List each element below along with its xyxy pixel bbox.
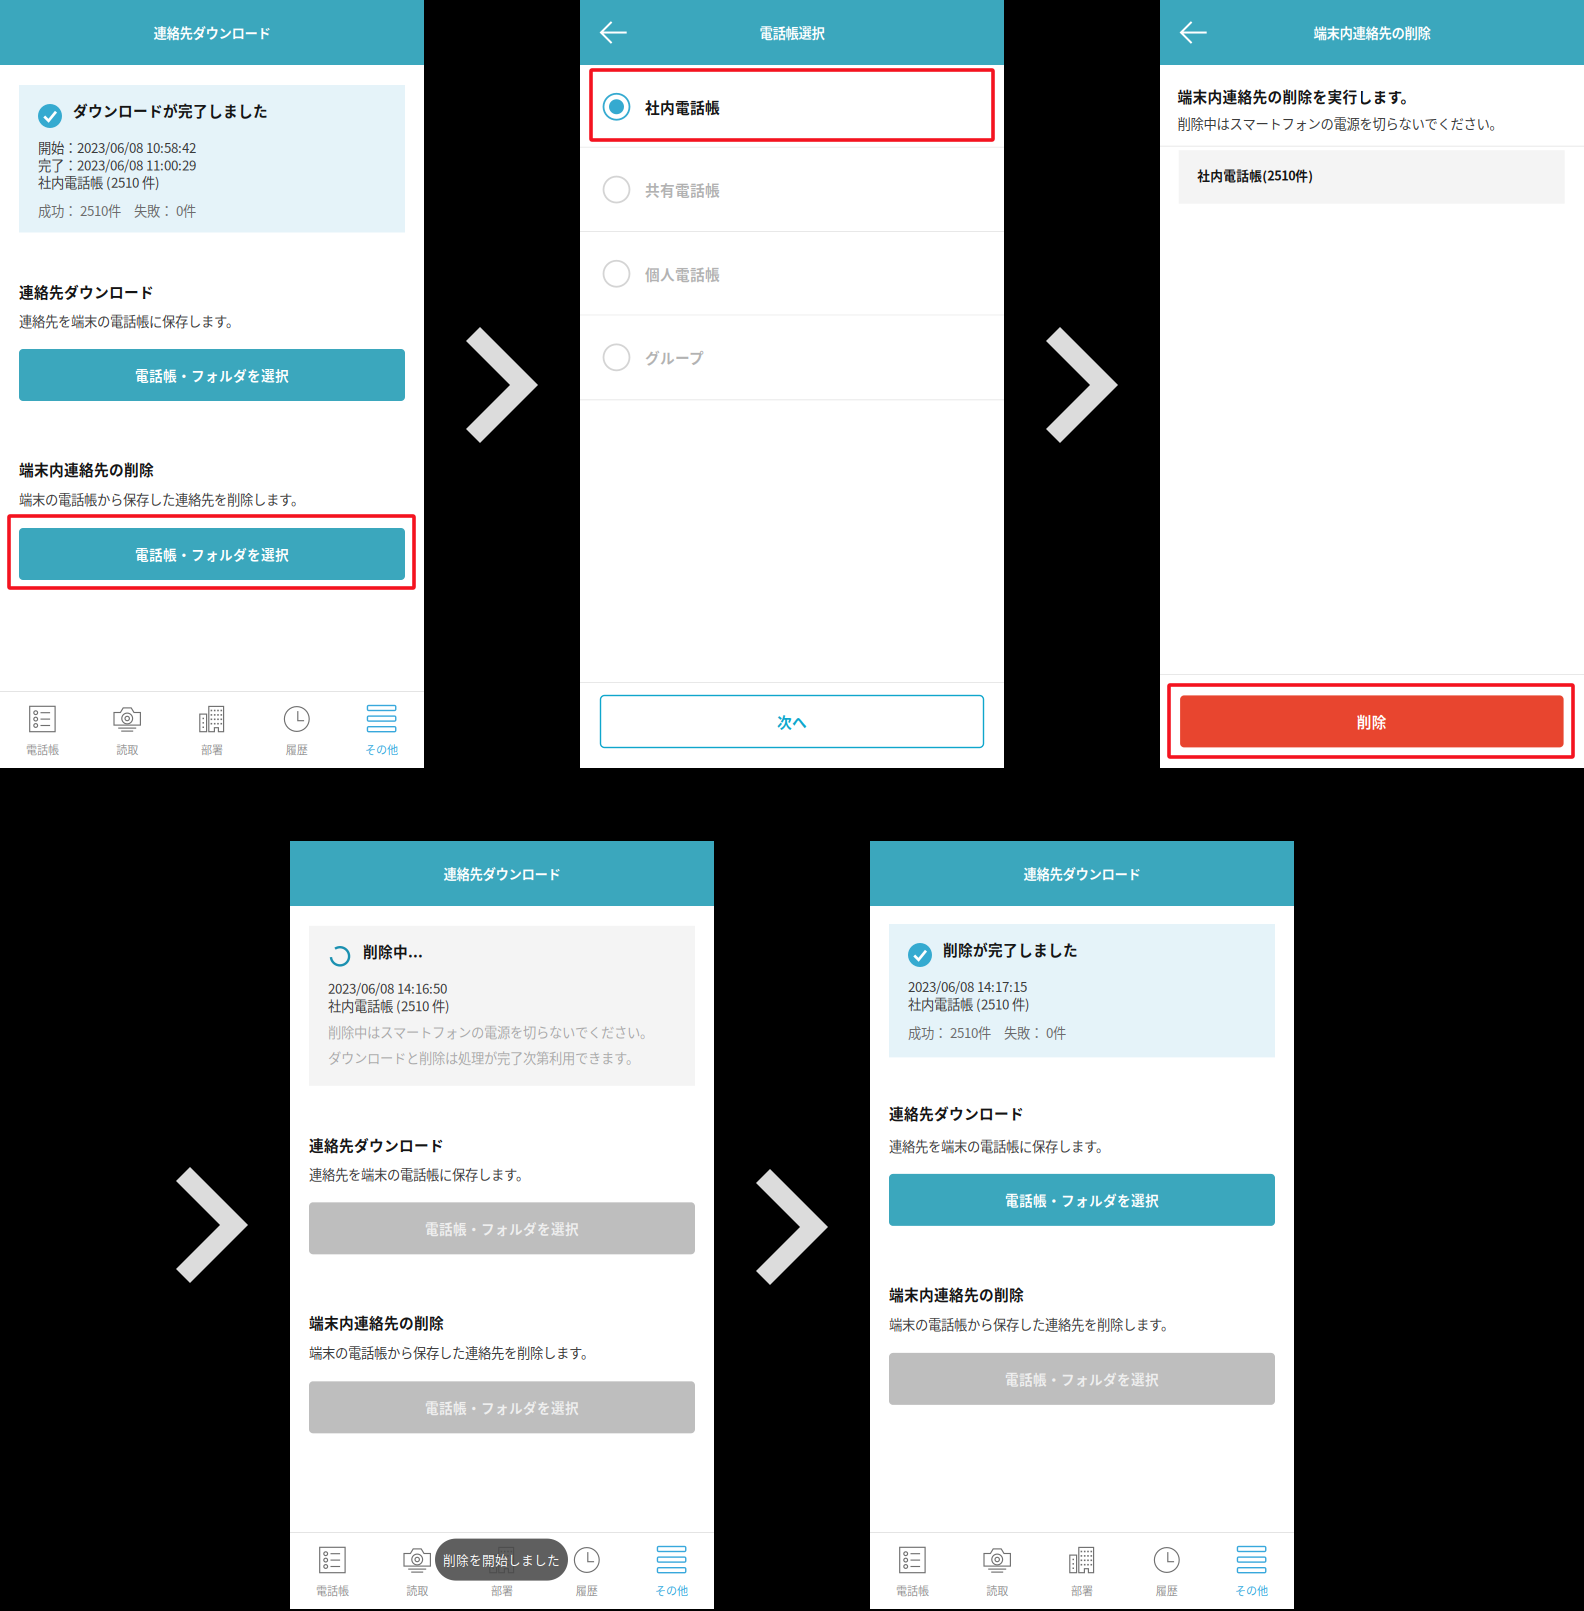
button[interactable]: 共有電話帳	[580, 148, 1004, 231]
button[interactable]: 電話帳・フォルダを選択	[19, 528, 405, 580]
staticText: 電話帳・フォルダを選択	[425, 1218, 579, 1238]
button[interactable]: 次へ	[600, 695, 983, 747]
staticText: 個人電話帳	[645, 263, 720, 284]
staticText: 端末の電話帳から保存した連絡先を削除します。	[309, 1343, 594, 1362]
staticText: 電話帳	[896, 1582, 929, 1598]
staticText: 連絡先ダウンロード	[1023, 864, 1140, 883]
staticText: 読取	[986, 1582, 1008, 1598]
staticText: 削除	[1357, 711, 1387, 732]
staticText: 連絡先を端末の電話帳に保存します。	[309, 1164, 529, 1184]
staticText: 社内電話帳(2510件)	[1197, 166, 1313, 184]
staticText: 削除を開始しました	[443, 1550, 560, 1569]
staticText: 端末の電話帳から保存した連絡先を削除します。	[19, 489, 304, 509]
staticText: 成功： 2510件 失敗： 0件	[908, 1022, 1066, 1042]
staticText: 電話帳・フォルダを選択	[135, 544, 289, 564]
staticText: 端末内連絡先の削除	[1313, 23, 1430, 42]
button[interactable]: 部署	[170, 692, 254, 768]
staticText: 電話帳・フォルダを選択	[425, 1397, 579, 1417]
staticText: 端末内連絡先の削除	[19, 458, 154, 480]
staticText: 部署	[201, 741, 223, 757]
staticText: 読取	[406, 1582, 428, 1598]
button[interactable]: 履歴	[254, 692, 339, 768]
staticText: 連絡先ダウンロード	[19, 281, 154, 302]
staticText: 履歴	[1156, 1582, 1178, 1598]
staticText: 社内電話帳 (2510 件)	[328, 996, 450, 1015]
staticText: グループ	[645, 347, 704, 368]
button[interactable]: 個人電話帳	[580, 232, 1004, 315]
button[interactable]: その他	[629, 1533, 714, 1609]
button[interactable]: 読取	[375, 1533, 460, 1609]
staticText: 開始：2023/06/08 10:58:42	[38, 137, 196, 157]
staticText: 完了：2023/06/08 11:00:29	[38, 155, 196, 174]
staticText: 読取	[116, 741, 138, 757]
button[interactable]: 履歴	[1124, 1533, 1209, 1609]
staticText: 電話帳選択	[759, 23, 824, 42]
staticText: 端末内連絡先の削除	[889, 1283, 1024, 1305]
staticText: その他	[1235, 1582, 1268, 1598]
staticText: 電話帳・フォルダを選択	[135, 365, 289, 385]
button[interactable]: 電話帳・フォルダを選択	[309, 1381, 695, 1433]
staticText: 次へ	[777, 711, 807, 732]
staticText: 連絡先を端末の電話帳に保存します。	[19, 311, 239, 330]
staticText: 連絡先ダウンロード	[889, 1103, 1024, 1124]
staticText: 電話帳・フォルダを選択	[1005, 1369, 1159, 1389]
button[interactable]: その他	[1209, 1533, 1294, 1609]
button[interactable]: グループ	[580, 316, 1004, 399]
button[interactable]: 電話帳・フォルダを選択	[19, 349, 405, 401]
staticText: 連絡先ダウンロード	[153, 23, 270, 42]
staticText: 削除が完了しました	[943, 939, 1078, 960]
button[interactable]: 電話帳	[870, 1533, 955, 1609]
button[interactable]: 戻る	[1169, 0, 1217, 65]
staticText: 社内電話帳 (2510 件)	[38, 172, 160, 192]
staticText: 電話帳	[26, 741, 59, 757]
staticText: 電話帳	[316, 1582, 349, 1598]
staticText: 削除中はスマートフォンの電源を切らないでください。	[1177, 113, 1502, 133]
button[interactable]: 戻る	[589, 0, 637, 65]
staticText: ダウンロードと削除は処理が完了次第利用できます。	[328, 1048, 639, 1067]
staticText: 連絡先ダウンロード	[309, 1134, 444, 1155]
button[interactable]: 読取	[85, 692, 170, 768]
staticText: 連絡先ダウンロード	[443, 864, 560, 883]
staticText: 2023/06/08 14:17:15	[908, 976, 1027, 996]
button[interactable]: 電話帳	[290, 1533, 375, 1609]
staticText: 履歴	[286, 741, 308, 757]
staticText: 削除中はスマートフォンの電源を切らないでください。	[328, 1022, 653, 1041]
staticText: ダウンロードが完了しました	[73, 100, 268, 121]
staticText: 端末内連絡先の削除を実行します。	[1177, 85, 1415, 107]
staticText: 社内電話帳 (2510 件)	[908, 994, 1030, 1013]
staticText: 履歴	[576, 1582, 598, 1598]
staticText: 2023/06/08 14:16:50	[328, 978, 447, 998]
staticText: その他	[365, 741, 398, 757]
staticText: 部署	[491, 1582, 513, 1598]
button[interactable]: 読取	[955, 1533, 1040, 1609]
button[interactable]: 部署	[460, 1533, 544, 1609]
button[interactable]: 電話帳・フォルダを選択	[889, 1353, 1275, 1405]
staticText: 端末内連絡先の削除	[309, 1312, 444, 1333]
button[interactable]: 電話帳	[0, 692, 85, 768]
button[interactable]: 電話帳・フォルダを選択	[889, 1174, 1275, 1226]
button[interactable]: 社内電話帳	[580, 65, 1004, 148]
staticText: 連絡先を端末の電話帳に保存します。	[889, 1136, 1109, 1155]
button[interactable]: 削除	[1180, 695, 1564, 747]
staticText: 部署	[1071, 1582, 1093, 1598]
button[interactable]: 電話帳・フォルダを選択	[309, 1202, 695, 1254]
staticText: 社内電話帳	[645, 96, 720, 117]
button[interactable]: 履歴	[544, 1533, 629, 1609]
button[interactable]: その他	[339, 692, 424, 768]
staticText: 削除中...	[363, 941, 423, 962]
staticText: 共有電話帳	[645, 179, 720, 200]
staticText: 成功： 2510件 失敗： 0件	[38, 200, 196, 220]
staticText: その他	[655, 1582, 688, 1598]
staticText: 電話帳・フォルダを選択	[1005, 1190, 1159, 1210]
staticText: 端末の電話帳から保存した連絡先を削除します。	[889, 1314, 1174, 1333]
button[interactable]: 部署	[1040, 1533, 1124, 1609]
